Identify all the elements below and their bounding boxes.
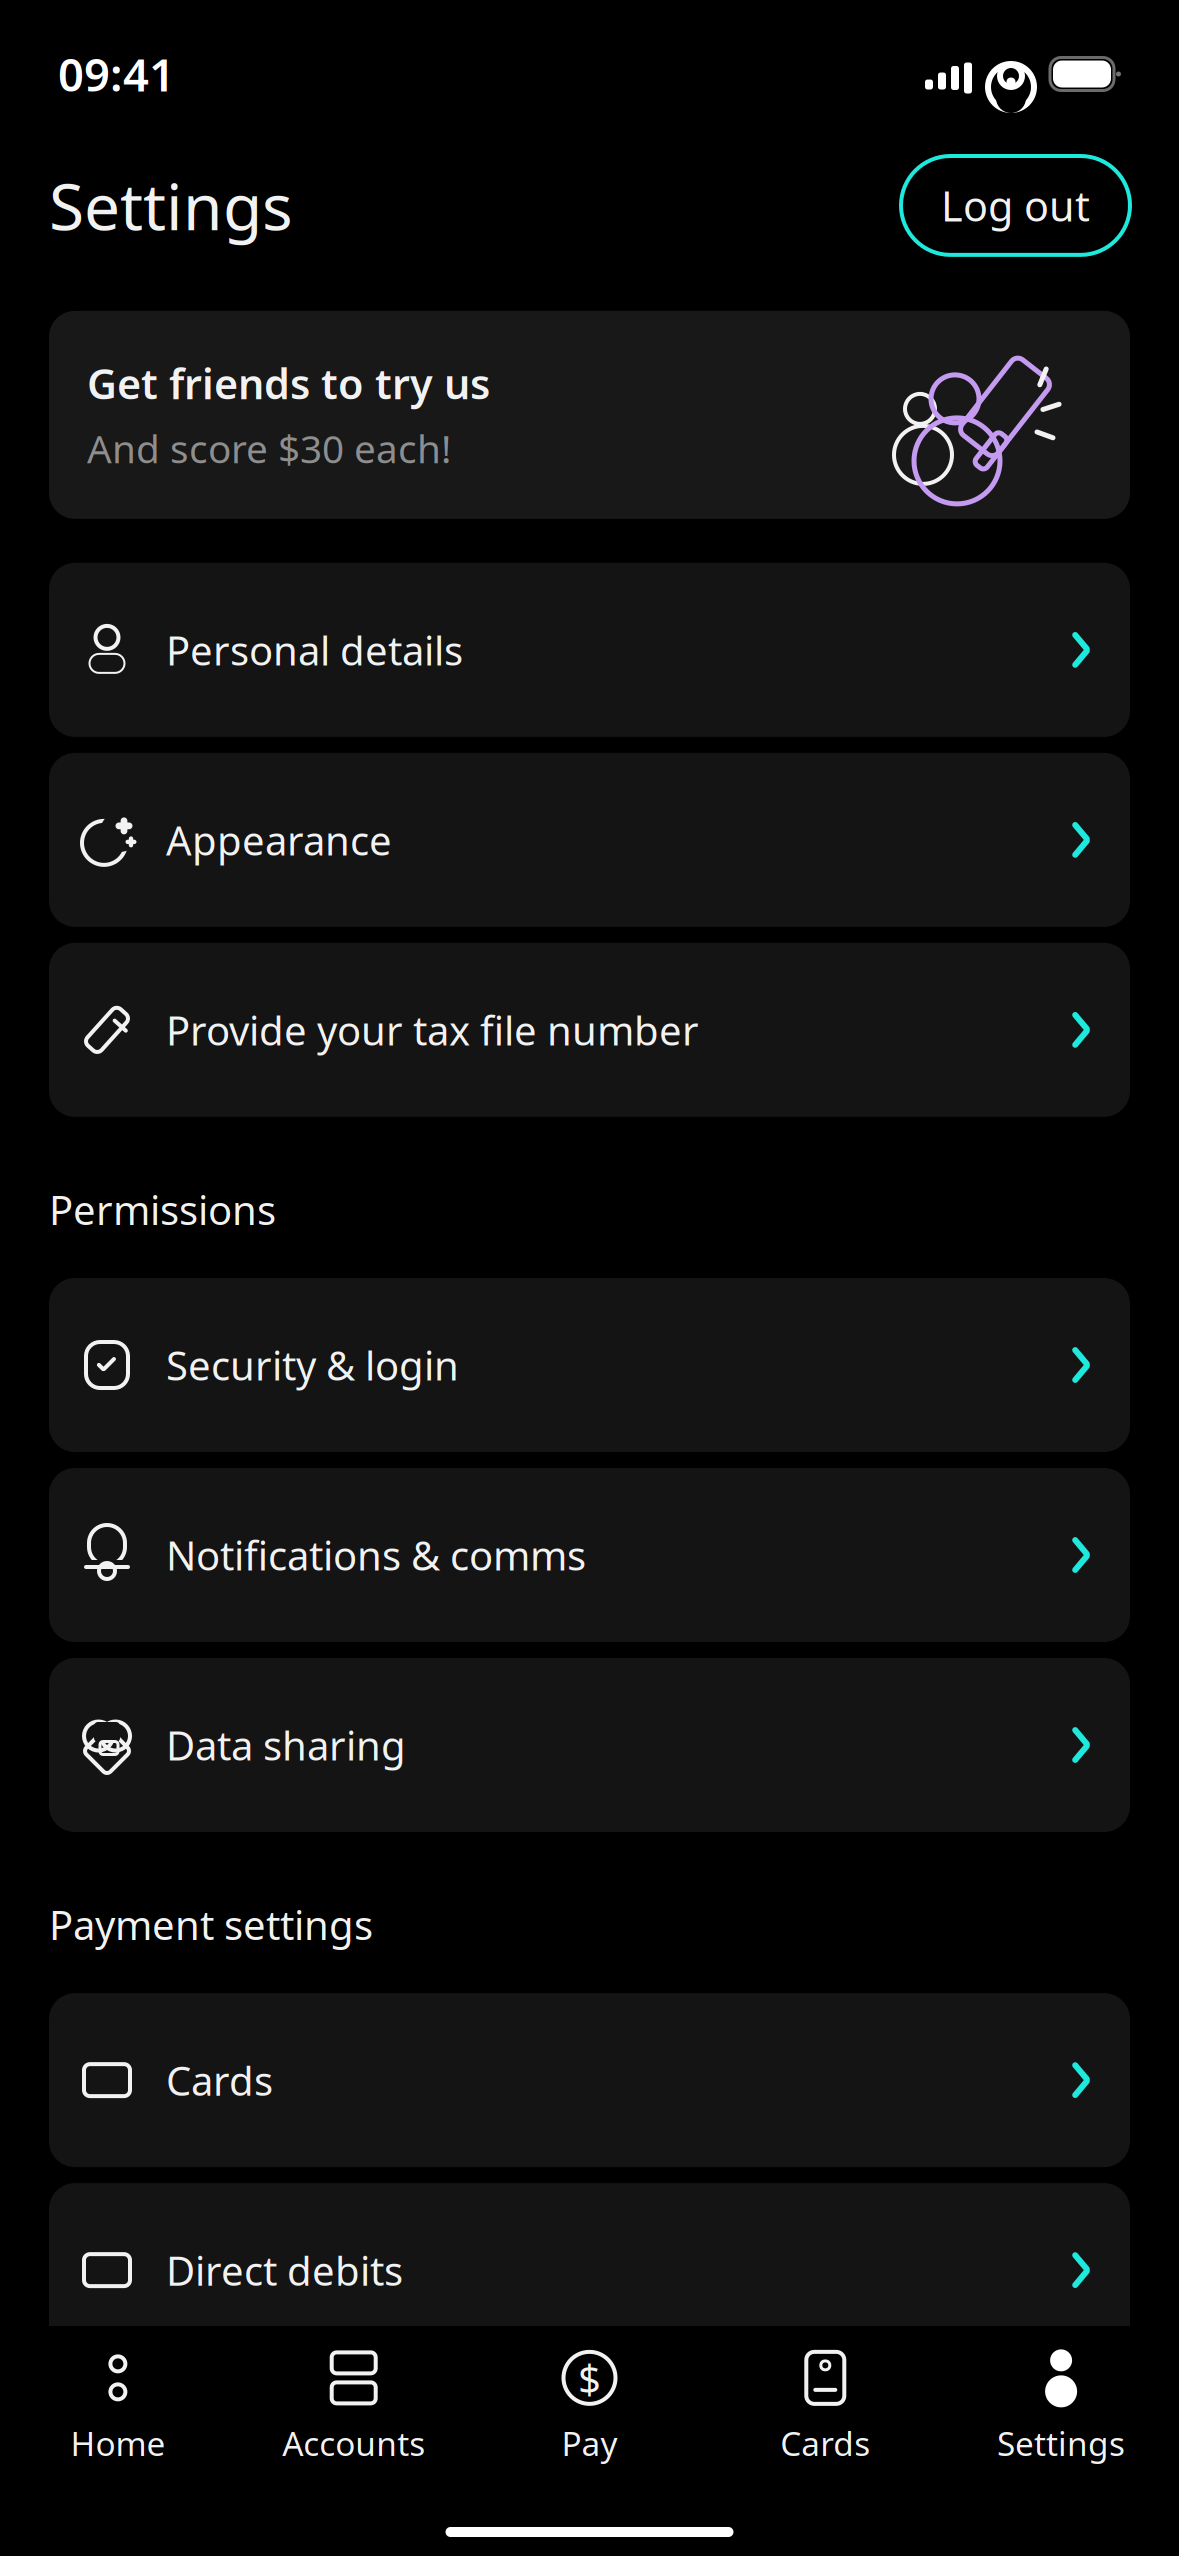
staticText: Get friends to try us	[87, 356, 490, 411]
staticText: Cards	[780, 2421, 870, 2465]
staticText: Log out	[941, 178, 1090, 233]
button[interactable]: Provide your tax file number	[49, 943, 1130, 1117]
staticText: Provide your tax file number	[166, 1003, 699, 1056]
button[interactable]: Cards	[707, 2348, 943, 2468]
staticText: Pay	[561, 2421, 617, 2465]
button[interactable]: Cards	[49, 1993, 1130, 2167]
staticText: Permissions	[49, 1183, 276, 1236]
button[interactable]: Direct debits	[49, 2183, 1130, 2357]
staticText: Cards	[166, 2054, 273, 2107]
button[interactable]: Settings	[943, 2348, 1179, 2468]
button[interactable]: Appearance	[49, 753, 1130, 927]
staticText: Payment settings	[49, 1898, 373, 1951]
staticText: Appearance	[166, 813, 392, 866]
staticText: Accounts	[282, 2421, 425, 2465]
button[interactable]: Data sharing	[49, 1658, 1130, 1832]
button[interactable]: Accounts	[236, 2348, 472, 2468]
staticText: Settings	[49, 163, 293, 248]
button[interactable]: Log out	[901, 156, 1130, 255]
staticText: Direct debits	[166, 2244, 403, 2297]
button[interactable]: Home	[0, 2348, 236, 2468]
button[interactable]: Personal details	[49, 563, 1130, 737]
button[interactable]: Notifications & comms	[49, 1468, 1130, 1642]
staticText: Notifications & comms	[166, 1528, 586, 1581]
staticText: 09:41	[58, 44, 175, 104]
staticText: Settings	[997, 2421, 1125, 2465]
staticText: Personal details	[166, 623, 463, 676]
staticText: Home	[70, 2421, 165, 2465]
button[interactable]: Get friends to try us	[49, 311, 1130, 519]
staticText: Security & login	[166, 1338, 459, 1391]
staticText: And score $30 each!	[87, 423, 451, 474]
button[interactable]: $	[472, 2348, 707, 2468]
staticText: Data sharing	[166, 1718, 406, 1771]
button[interactable]: Security & login	[49, 1278, 1130, 1452]
staticText: $	[578, 2351, 601, 2404]
